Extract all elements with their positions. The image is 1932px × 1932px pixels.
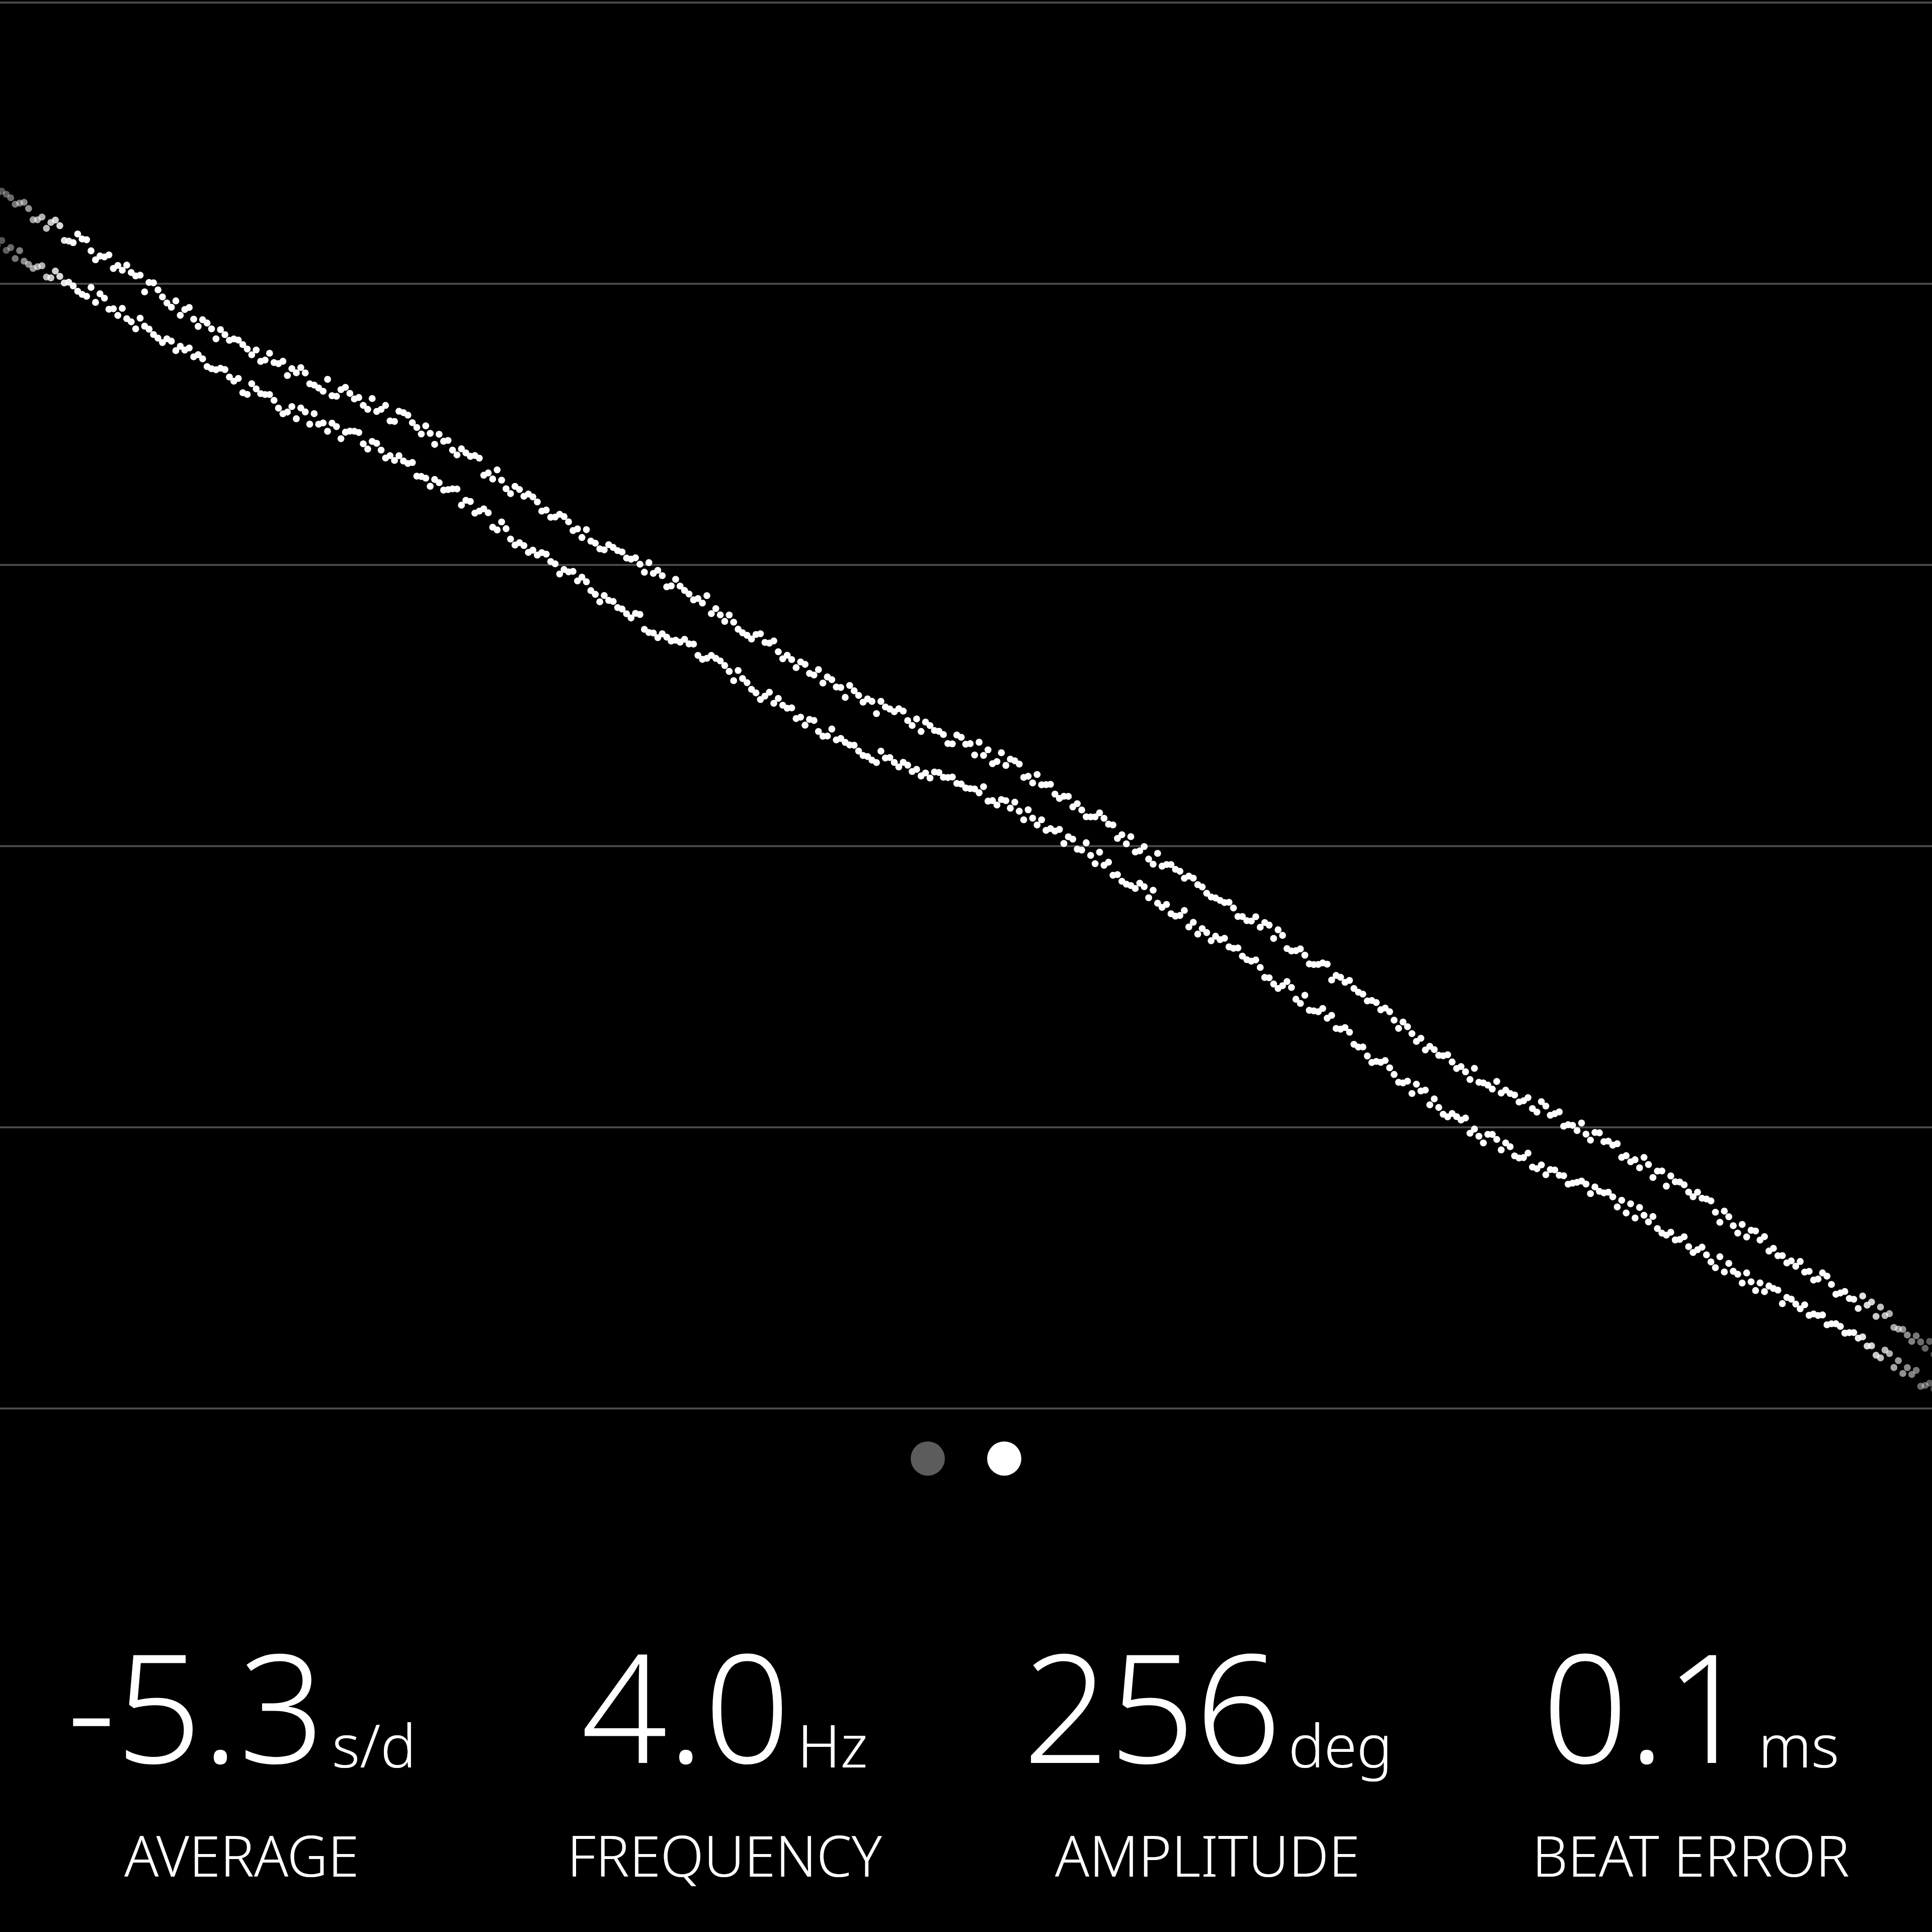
staticText: 256 bbox=[1023, 1601, 1281, 1807]
button[interactable]: AMPLITUDE 256 deg bbox=[966, 1597, 1449, 1897]
staticText: -5.3 bbox=[67, 1601, 325, 1807]
button[interactable]: BEAT ERROR 0.1 ms bbox=[1449, 1597, 1932, 1897]
staticText: AMPLITUDE bbox=[1055, 1816, 1360, 1893]
button[interactable]: AVERAGE -5.3 s/d bbox=[0, 1597, 483, 1897]
staticText: 0.1 bbox=[1542, 1601, 1751, 1807]
staticText: AVERAGE bbox=[124, 1816, 359, 1893]
button[interactable]: Page 2 of 2 bbox=[911, 1441, 1021, 1476]
staticText: BEAT ERROR bbox=[1532, 1816, 1849, 1893]
staticText: s/d bbox=[332, 1704, 416, 1785]
staticText: ms bbox=[1758, 1704, 1839, 1785]
staticText: FREQUENCY bbox=[567, 1816, 882, 1893]
staticText: deg bbox=[1289, 1704, 1393, 1785]
button[interactable]: Timegrapher rate trace bbox=[0, 0, 1932, 1415]
staticText: Hz bbox=[797, 1704, 868, 1785]
button[interactable]: FREQUENCY 4.0 Hz bbox=[483, 1597, 966, 1897]
staticText: 4.0 bbox=[581, 1601, 790, 1807]
